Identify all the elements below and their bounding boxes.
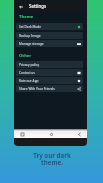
staticText: Manage storage [19, 42, 44, 46]
staticText: Privacy policy [19, 63, 40, 67]
staticText: Theme [19, 14, 34, 20]
button[interactable]: Back [76, 131, 82, 137]
button[interactable]: Home [48, 131, 54, 137]
staticText: Try our dark theme. [33, 151, 71, 167]
staticText: Contact us [19, 71, 35, 75]
button[interactable]: Manage storage [16, 40, 83, 47]
button[interactable]: Rate our App [16, 77, 83, 84]
button[interactable]: Share With Your Friends [16, 85, 83, 92]
staticText: Other [19, 53, 32, 59]
button[interactable]: Set Dark Mode [16, 23, 83, 30]
staticText: Set Dark Mode [19, 25, 42, 29]
staticText: Settings [29, 3, 47, 9]
staticText: Share With Your Friends [19, 87, 55, 91]
button[interactable]: Backup Image [16, 32, 83, 39]
button[interactable]: Recents [19, 131, 25, 137]
button[interactable]: Contact us [16, 69, 83, 76]
staticText: Backup Image [19, 34, 41, 38]
button[interactable]: Back [16, 2, 25, 11]
button[interactable]: Privacy policy [16, 61, 83, 68]
staticText: Rate our App [19, 79, 39, 83]
